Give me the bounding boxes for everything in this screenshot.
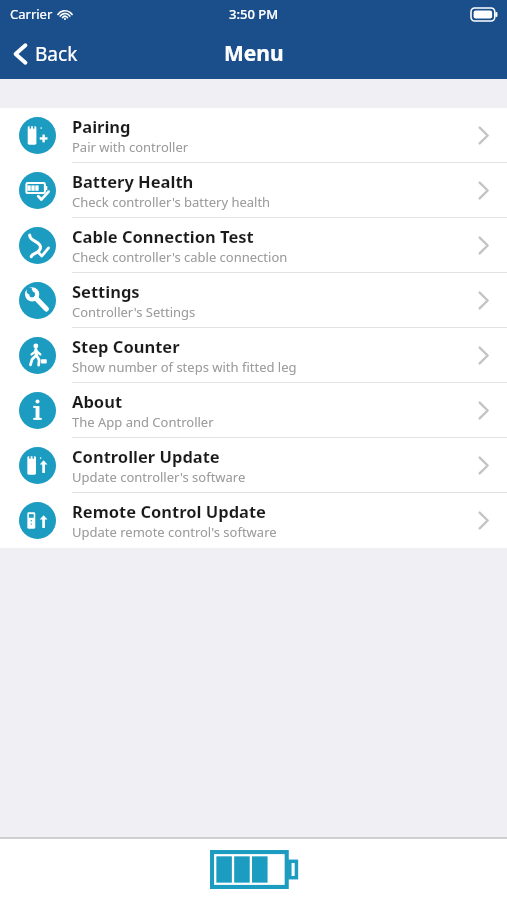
button[interactable]: Battery Health <box>0 163 507 218</box>
staticText: Carrier <box>10 5 53 23</box>
button[interactable]: Settings <box>0 273 507 328</box>
staticText: Check controller's battery health <box>72 193 271 211</box>
staticText: 3:50 PM <box>229 5 279 23</box>
other: Battery level <box>210 850 298 889</box>
button[interactable]: About <box>0 383 507 438</box>
staticText: Step Counter <box>72 335 180 357</box>
staticText: About <box>72 390 123 412</box>
staticText: Pair with controller <box>72 138 189 156</box>
staticText: Battery Health <box>72 170 194 192</box>
staticText: Pairing <box>72 115 131 137</box>
staticText: The App and Controller <box>72 413 214 431</box>
staticText: Controller Update <box>72 445 220 467</box>
staticText: Update remote control's software <box>72 523 277 541</box>
staticText: Settings <box>72 280 140 302</box>
button[interactable]: Remote Control Update <box>0 493 507 548</box>
button[interactable]: Back <box>0 33 92 75</box>
staticText: Update controller's software <box>72 468 246 486</box>
staticText: Remote Control Update <box>72 500 266 522</box>
button[interactable]: Pairing <box>0 108 507 163</box>
staticText: Controller's Settings <box>72 303 196 321</box>
staticText: Back <box>35 41 78 67</box>
button[interactable]: Step Counter <box>0 328 507 383</box>
staticText: Show number of steps with fitted leg <box>72 358 297 376</box>
button[interactable]: Cable Connection Test <box>0 218 507 273</box>
staticText: Cable Connection Test <box>72 225 254 247</box>
staticText: Menu <box>224 39 284 68</box>
button[interactable]: Controller Update <box>0 438 507 493</box>
staticText: Check controller's cable connection <box>72 248 288 266</box>
